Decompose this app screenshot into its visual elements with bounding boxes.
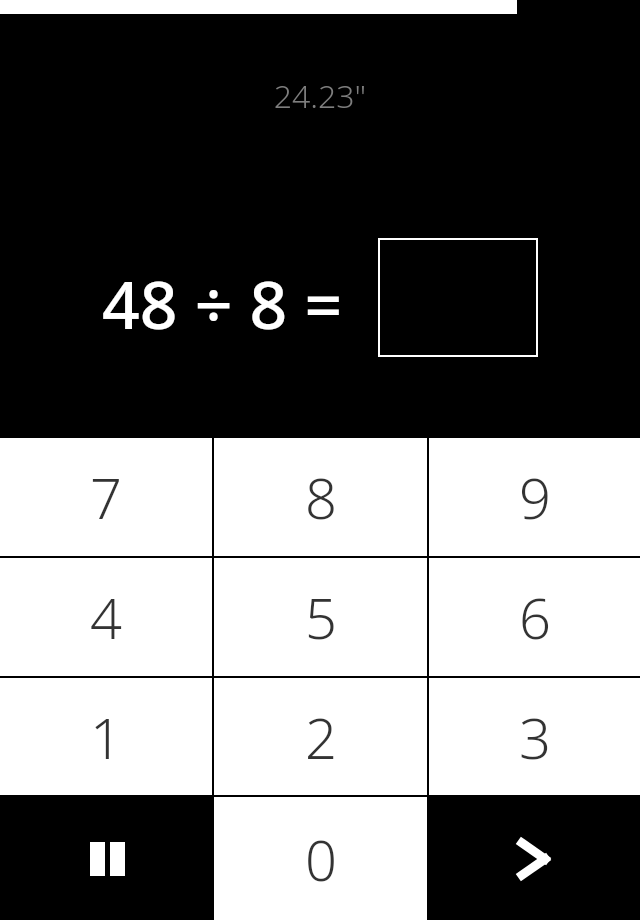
button[interactable]: 6	[429, 558, 640, 676]
button[interactable]: 4	[0, 558, 212, 676]
staticText: 5	[305, 579, 337, 655]
button[interactable]: 5	[214, 558, 427, 676]
staticText: 9	[519, 459, 551, 535]
button[interactable]: 0	[214, 797, 427, 920]
button[interactable]: Answer	[378, 238, 538, 357]
staticText: 7	[90, 459, 122, 535]
staticText: 1	[90, 699, 122, 775]
button[interactable]: Pause	[0, 797, 214, 920]
staticText: 6	[519, 579, 551, 655]
staticText: 2	[305, 699, 337, 775]
button[interactable]: 3	[429, 678, 640, 795]
button[interactable]: 1	[0, 678, 212, 795]
staticText: 8	[305, 459, 337, 535]
button[interactable]: 2	[214, 678, 427, 795]
staticText: 3	[519, 699, 551, 775]
button[interactable]: Next	[427, 797, 640, 920]
staticText: 0	[305, 821, 337, 897]
staticText: 4	[90, 579, 122, 655]
staticText: 24.23"	[0, 74, 640, 118]
button[interactable]: 8	[214, 438, 427, 556]
button[interactable]: 9	[429, 438, 640, 556]
button[interactable]: 7	[0, 438, 212, 556]
staticText: 48 ÷ 8 =	[102, 258, 343, 348]
